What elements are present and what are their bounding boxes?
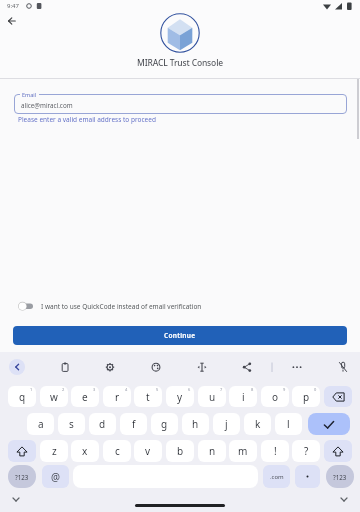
button[interactable]: a: [27, 413, 54, 435]
staticText: 4: [125, 387, 128, 392]
staticText: !: [274, 444, 277, 458]
staticText: f: [132, 417, 136, 431]
button[interactable]: ?: [292, 440, 320, 462]
staticText: I want to use QuickCode instead of email…: [41, 302, 202, 311]
button[interactable]: .com: [263, 465, 290, 488]
staticText: a: [38, 417, 44, 431]
staticText: ?123: [333, 473, 347, 481]
staticText: 7: [220, 387, 223, 392]
button[interactable]: [9, 359, 25, 375]
staticText: u: [209, 390, 216, 404]
staticText: Email: [22, 91, 37, 98]
staticText: d: [99, 417, 106, 431]
staticText: 0: [314, 387, 317, 392]
button[interactable]: alice@miracl.com: [14, 94, 347, 114]
staticText: w: [50, 390, 58, 404]
staticText: t: [146, 390, 150, 404]
staticText: 6: [188, 387, 191, 392]
staticText: p: [303, 390, 310, 404]
staticText: ?: [304, 444, 309, 458]
button[interactable]: e: [71, 386, 99, 407]
button[interactable]: [308, 413, 350, 435]
button[interactable]: j: [213, 413, 240, 435]
button[interactable]: i: [229, 386, 257, 407]
button[interactable]: s: [58, 413, 85, 435]
button[interactable]: k: [244, 413, 271, 435]
button[interactable]: [295, 465, 320, 488]
staticText: r: [115, 390, 120, 404]
button[interactable]: p: [292, 386, 320, 407]
staticText: c: [115, 444, 120, 458]
button[interactable]: m: [229, 440, 257, 462]
staticText: 3: [93, 387, 96, 392]
button[interactable]: q: [8, 386, 36, 407]
button[interactable]: g: [151, 413, 178, 435]
staticText: MIRACL Trust Console: [137, 57, 224, 69]
staticText: y: [177, 390, 183, 404]
staticText: b: [177, 444, 184, 458]
button[interactable]: [324, 386, 352, 407]
staticText: i: [242, 390, 245, 404]
staticText: 8: [251, 387, 254, 392]
button[interactable]: ?123: [326, 465, 354, 488]
button[interactable]: I want to use QuickCode instead of email…: [14, 298, 344, 314]
staticText: h: [192, 417, 199, 431]
button[interactable]: Continue: [13, 326, 347, 345]
staticText: e: [82, 390, 88, 404]
button[interactable]: b: [166, 440, 194, 462]
button[interactable]: u: [198, 386, 226, 407]
staticText: x: [82, 444, 88, 458]
staticText: g: [161, 417, 168, 431]
button[interactable]: o: [261, 386, 289, 407]
staticText: j: [225, 417, 228, 431]
button[interactable]: v: [134, 440, 162, 462]
staticText: alice@miracl.com: [21, 101, 73, 110]
button[interactable]: y: [166, 386, 194, 407]
staticText: ?123: [15, 473, 29, 481]
button[interactable]: r: [103, 386, 131, 407]
staticText: l: [287, 417, 290, 431]
button[interactable]: t: [134, 386, 162, 407]
staticText: k: [255, 417, 261, 431]
staticText: 1: [30, 387, 33, 392]
staticText: o: [272, 390, 279, 404]
staticText: Please enter a valid email address to pr…: [18, 115, 156, 124]
button[interactable]: l: [275, 413, 302, 435]
staticText: 9: [283, 387, 286, 392]
staticText: @: [51, 470, 60, 484]
button[interactable]: [3, 13, 20, 29]
staticText: v: [145, 444, 151, 458]
button[interactable]: !: [261, 440, 289, 462]
button[interactable]: [324, 440, 352, 462]
staticText: n: [209, 444, 216, 458]
staticText: 2: [62, 387, 65, 392]
staticText: s: [69, 417, 74, 431]
button[interactable]: d: [89, 413, 116, 435]
button[interactable]: ?123: [8, 465, 36, 488]
button[interactable]: [8, 440, 36, 462]
staticText: 5: [156, 387, 159, 392]
staticText: m: [238, 444, 248, 458]
staticText: Continue: [164, 331, 196, 340]
staticText: .com: [270, 473, 284, 481]
button[interactable]: c: [103, 440, 131, 462]
staticText: 9:47: [7, 2, 19, 10]
button[interactable]: h: [182, 413, 209, 435]
button[interactable]: x: [71, 440, 99, 462]
button[interactable]: @: [42, 465, 69, 488]
button[interactable]: z: [40, 440, 68, 462]
staticText: q: [19, 390, 26, 404]
button[interactable]: f: [120, 413, 147, 435]
button[interactable]: w: [40, 386, 68, 407]
staticText: z: [52, 444, 57, 458]
button[interactable]: n: [198, 440, 226, 462]
